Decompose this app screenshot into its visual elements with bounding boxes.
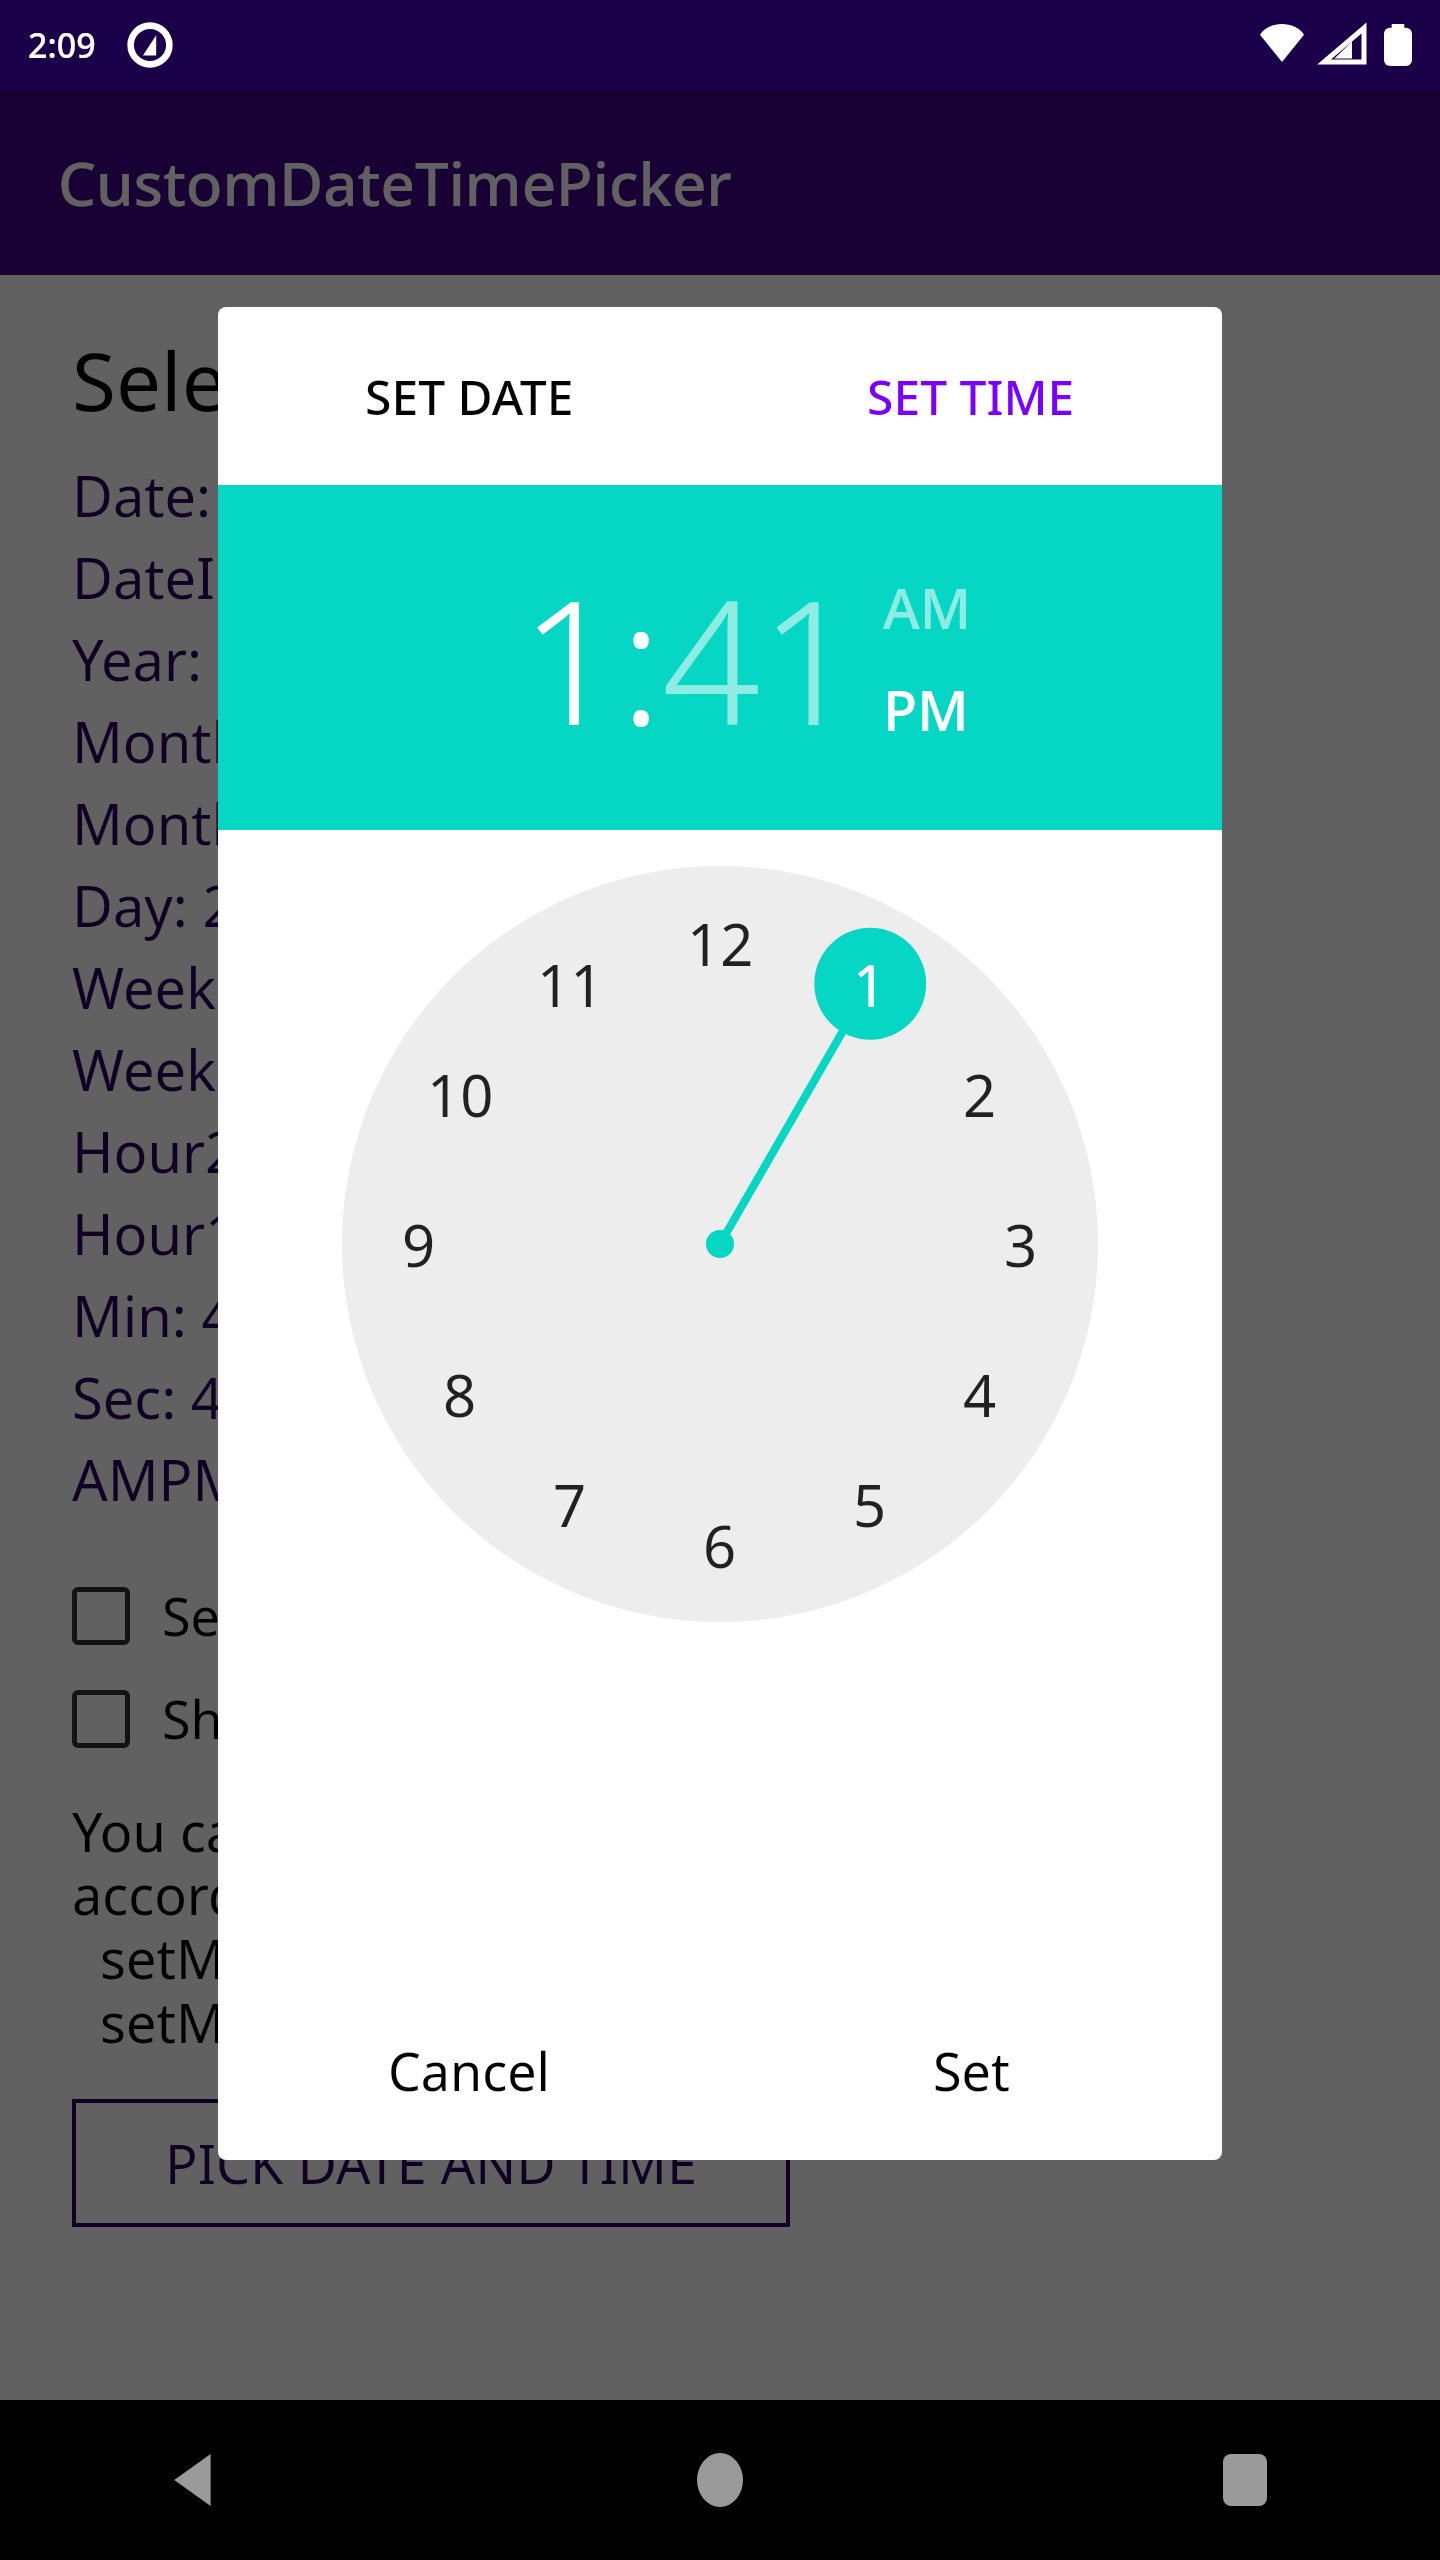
button[interactable]: SET TIME [720, 307, 1222, 485]
staticText: Sec: 45 [72, 1359, 255, 1435]
staticText: : [620, 541, 662, 775]
staticText: Hour12: 01 [72, 1195, 363, 1271]
button[interactable]: 1 [521, 541, 620, 775]
button[interactable]: Recents [1190, 2425, 1300, 2535]
staticText: Cancel [388, 2035, 550, 2106]
button[interactable]: PICK DATE AND TIME [72, 2099, 790, 2227]
staticText: Min: 41 [72, 1277, 266, 1353]
staticText: 12 [687, 904, 754, 983]
button[interactable]: 41 [662, 541, 859, 775]
staticText: 6 [703, 1506, 737, 1585]
staticText: 3 [1004, 1205, 1038, 1284]
staticText: 4 [963, 1355, 997, 1434]
staticText: 2 [963, 1055, 997, 1134]
staticText: Day: 22 [72, 867, 267, 943]
staticText: SET DATE [365, 364, 574, 429]
staticText: MonthName: Sep [72, 785, 531, 861]
staticText: Set [933, 2035, 1010, 2106]
button[interactable]: Home [665, 2425, 775, 2535]
staticText: 7 [553, 1465, 587, 1544]
staticText: CustomDateTimePicker [58, 142, 732, 224]
button[interactable]: Set [720, 1980, 1222, 2160]
staticText: 10 [427, 1055, 494, 1134]
staticText: DateInMilli: 17 [72, 539, 452, 615]
staticText: Year: 2024 [72, 621, 345, 697]
staticText: 8 [443, 1355, 477, 1434]
staticText: 5 [853, 1465, 887, 1544]
button[interactable]: Set Max Date [72, 1580, 1440, 1651]
staticText: PICK DATE AND TIME [165, 2126, 698, 2200]
button[interactable]: SET DATE [218, 307, 720, 485]
staticText: Month: 09 [72, 703, 340, 779]
staticText: SET TIME [867, 364, 1075, 429]
button[interactable]: Back [140, 2425, 250, 2535]
button[interactable]: AM [883, 569, 972, 645]
staticText: 2:09 [28, 22, 96, 68]
staticText: 1 [853, 945, 887, 1024]
staticText: Selected [72, 325, 389, 434]
staticText: WeekDay: 1 [72, 949, 379, 1025]
staticText: AMPM: PM [72, 1441, 358, 1517]
staticText: Set Max Date [162, 1580, 485, 1651]
button[interactable]: PM [883, 671, 969, 747]
button[interactable]: Cancel [218, 1980, 720, 2160]
staticText: WeekDayFull: Sun [72, 1031, 539, 1107]
staticText: 11 [537, 945, 604, 1024]
button[interactable]: 1 [342, 866, 1098, 1622]
staticText: Hour24: 13 [72, 1113, 363, 1189]
staticText: Date: Sun Sep [72, 457, 437, 533]
staticText: 9 [402, 1205, 436, 1284]
staticText: You can set min and max date range accor… [72, 1794, 996, 2059]
staticText: Show Seconds [162, 1683, 511, 1754]
button[interactable]: Show Seconds [72, 1683, 1440, 1754]
